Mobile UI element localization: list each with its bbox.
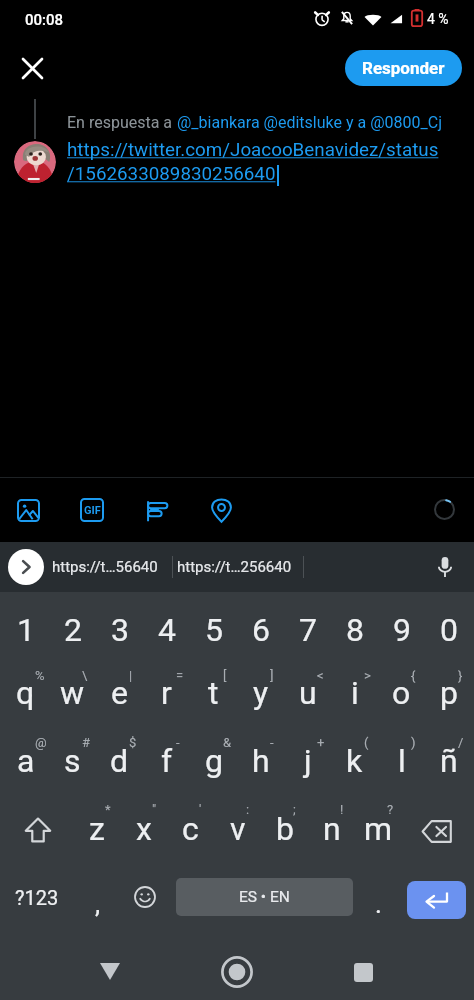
button[interactable]: o bbox=[378, 669, 425, 717]
staticText: 9 bbox=[393, 611, 411, 649]
button[interactable]: 4 bbox=[143, 606, 190, 654]
staticText: n bbox=[323, 810, 341, 848]
staticText: 0 bbox=[440, 611, 458, 649]
button[interactable]: t bbox=[190, 669, 237, 717]
staticText: [ bbox=[223, 668, 227, 683]
staticText: k bbox=[346, 742, 363, 780]
staticText: % bbox=[35, 668, 45, 683]
staticText: ?123 bbox=[15, 886, 59, 909]
button[interactable]: ES • EN bbox=[176, 878, 353, 916]
button[interactable]: Responder bbox=[345, 50, 462, 86]
button[interactable]: j bbox=[284, 737, 331, 785]
button[interactable]: 2 bbox=[49, 606, 96, 654]
button[interactable]: m bbox=[355, 805, 402, 853]
staticText: 1 bbox=[17, 611, 35, 649]
button[interactable]: Ubicacion bbox=[195, 484, 247, 536]
staticText: w bbox=[60, 674, 85, 712]
button[interactable]: b bbox=[261, 805, 308, 853]
button[interactable]: Expandir sugerencias bbox=[8, 549, 44, 585]
button[interactable]: v bbox=[214, 805, 261, 853]
button[interactable]: 6 bbox=[237, 606, 284, 654]
button[interactable]: q bbox=[2, 669, 49, 717]
button[interactable]: f bbox=[143, 737, 190, 785]
staticText: f bbox=[161, 742, 173, 780]
button[interactable]: r bbox=[143, 669, 190, 717]
button[interactable]: g bbox=[190, 737, 237, 785]
button[interactable]: a bbox=[2, 737, 49, 785]
staticText: 5 bbox=[205, 611, 223, 649]
staticText: - bbox=[270, 735, 274, 750]
button[interactable]: 5 bbox=[190, 606, 237, 654]
staticText: l bbox=[398, 742, 406, 780]
staticText: q bbox=[16, 674, 35, 712]
button[interactable]: w bbox=[49, 669, 96, 717]
staticText: ? bbox=[387, 802, 394, 817]
staticText: > bbox=[364, 668, 371, 683]
staticText: = bbox=[176, 668, 184, 683]
button[interactable]: 7 bbox=[284, 606, 331, 654]
button[interactable]: p bbox=[425, 669, 472, 717]
button[interactable]: i bbox=[331, 669, 378, 717]
button[interactable]: https://t…56640 bbox=[47, 542, 162, 592]
button[interactable]: u bbox=[284, 669, 331, 717]
staticText: https://t…56640 bbox=[52, 558, 158, 576]
button[interactable]: h bbox=[237, 737, 284, 785]
staticText: d bbox=[110, 742, 129, 780]
button[interactable]: ñ bbox=[425, 737, 472, 785]
button[interactable]: Intro bbox=[407, 881, 466, 919]
staticText: s bbox=[64, 742, 81, 780]
staticText: 4 % bbox=[427, 11, 449, 27]
button[interactable]: Emoji bbox=[122, 867, 168, 927]
button[interactable]: ?123 bbox=[6, 867, 68, 927]
button[interactable]: Cerrar bbox=[10, 46, 54, 90]
staticText: 2 bbox=[64, 611, 82, 649]
button[interactable]: l bbox=[378, 737, 425, 785]
staticText: Responder bbox=[362, 58, 445, 78]
button[interactable]: , bbox=[75, 867, 121, 927]
staticText: & bbox=[223, 735, 232, 750]
button[interactable]: e bbox=[96, 669, 143, 717]
staticText: i bbox=[351, 674, 359, 712]
button[interactable]: d bbox=[96, 737, 143, 785]
button[interactable]: x bbox=[120, 805, 167, 853]
button[interactable]: GIF bbox=[66, 484, 118, 536]
staticText: # bbox=[82, 735, 91, 750]
button[interactable]: . bbox=[356, 867, 400, 927]
button[interactable]: Inicio bbox=[213, 948, 261, 996]
button[interactable]: Dictado por voz bbox=[429, 551, 461, 583]
staticText: GIF bbox=[84, 504, 101, 517]
staticText: $ bbox=[129, 735, 137, 750]
button[interactable]: 3 bbox=[96, 606, 143, 654]
staticText: e bbox=[111, 674, 128, 712]
button[interactable]: Encuesta bbox=[131, 484, 183, 536]
button[interactable]: 1 bbox=[2, 606, 49, 654]
button[interactable]: Mayusculas bbox=[14, 806, 61, 853]
button[interactable]: z bbox=[73, 805, 120, 853]
staticText: https://t…256640 bbox=[177, 558, 292, 576]
button[interactable]: s bbox=[49, 737, 96, 785]
button[interactable]: Aplicaciones recientes bbox=[339, 948, 387, 996]
staticText: - bbox=[176, 735, 180, 750]
button[interactable]: c bbox=[167, 805, 214, 853]
button[interactable]: 9 bbox=[378, 606, 425, 654]
button[interactable]: Atras bbox=[86, 947, 134, 995]
button[interactable]: https://t…256640 bbox=[177, 542, 292, 592]
staticText: @ bbox=[35, 735, 47, 750]
staticText: ñ bbox=[440, 742, 458, 780]
staticText: 8 bbox=[346, 611, 364, 649]
staticText: / bbox=[458, 735, 464, 750]
button[interactable]: Imagen bbox=[2, 484, 54, 536]
button[interactable]: 8 bbox=[331, 606, 378, 654]
button[interactable]: y bbox=[237, 669, 284, 717]
staticText: c bbox=[182, 810, 199, 848]
staticText: { bbox=[411, 668, 416, 683]
staticText: r bbox=[161, 674, 172, 712]
button[interactable]: n bbox=[308, 805, 355, 853]
staticText: h bbox=[252, 742, 270, 780]
button[interactable]: k bbox=[331, 737, 378, 785]
button[interactable]: Borrar bbox=[413, 808, 460, 855]
staticText: 3 bbox=[111, 611, 129, 649]
staticText: @_biankara @editsluke y a @0800_Cj bbox=[177, 113, 442, 132]
button[interactable]: 0 bbox=[425, 606, 472, 654]
staticText: ' bbox=[199, 802, 202, 817]
